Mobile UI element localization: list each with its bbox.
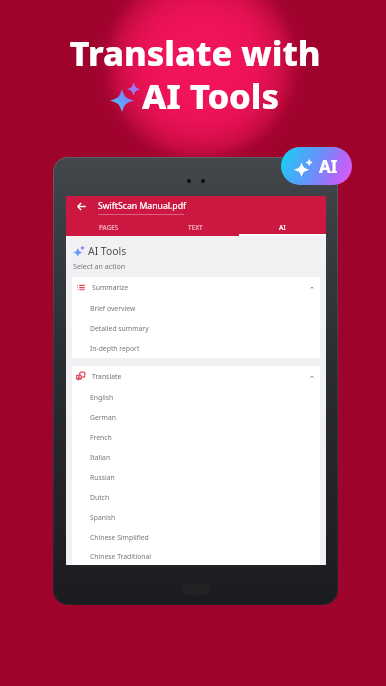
button[interactable]: French	[72, 427, 320, 447]
staticText: Spanish	[90, 513, 116, 522]
button[interactable]: German	[72, 407, 320, 427]
staticText: Dutch	[90, 493, 110, 502]
staticText: Chinese Traditional	[90, 552, 152, 561]
staticText: SwiftScan Manual.pdf	[98, 200, 187, 212]
button[interactable]: Summarize	[72, 277, 320, 298]
button[interactable]: In-depth report	[72, 338, 320, 358]
staticText: AI	[319, 155, 338, 178]
staticText: AI Tools	[142, 72, 280, 119]
staticText: Summarize	[92, 283, 129, 292]
staticText: English	[90, 393, 114, 402]
button[interactable]: Detailed summary	[72, 318, 320, 338]
button[interactable]: Spanish	[72, 507, 320, 527]
staticText: Russian	[90, 473, 115, 482]
staticText: TEXT	[188, 223, 203, 232]
button[interactable]: Back	[72, 197, 90, 215]
button[interactable]: PAGES	[66, 221, 152, 236]
staticText: French	[90, 433, 112, 442]
button[interactable]: Russian	[72, 467, 320, 487]
staticText: Translate with	[69, 29, 321, 76]
staticText: Translate	[92, 372, 122, 381]
staticText: AI Tools	[88, 244, 127, 258]
staticText: Chinese Simplified	[90, 533, 149, 542]
button[interactable]: English	[72, 387, 320, 407]
staticText: Select an action	[73, 261, 126, 271]
staticText: In-depth report	[90, 344, 140, 353]
button[interactable]: Translate	[72, 366, 320, 387]
staticText: German	[90, 413, 116, 422]
button[interactable]: Italian	[72, 447, 320, 467]
button[interactable]: TEXT	[152, 221, 239, 236]
staticText: PAGES	[99, 223, 119, 232]
button[interactable]: Brief overview	[72, 298, 320, 318]
button[interactable]: Dutch	[72, 487, 320, 507]
button[interactable]: Chinese Traditional	[72, 547, 320, 565]
staticText: Italian	[90, 453, 111, 462]
staticText: AI	[279, 223, 286, 232]
staticText: Brief overview	[90, 304, 136, 313]
staticText: Detailed summary	[90, 324, 149, 333]
button[interactable]: Chinese Simplified	[72, 527, 320, 547]
button[interactable]: AI	[239, 221, 326, 236]
button[interactable]: AI	[281, 147, 352, 185]
